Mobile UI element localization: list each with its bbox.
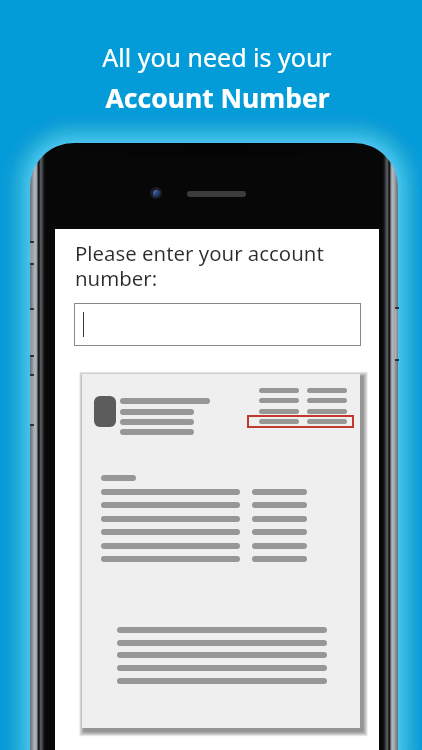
staticText: Account Number: [105, 80, 330, 116]
staticText: All you need is your: [102, 40, 332, 74]
button[interactable]: [74, 303, 361, 346]
staticText: Please enter your account number:: [75, 239, 324, 292]
